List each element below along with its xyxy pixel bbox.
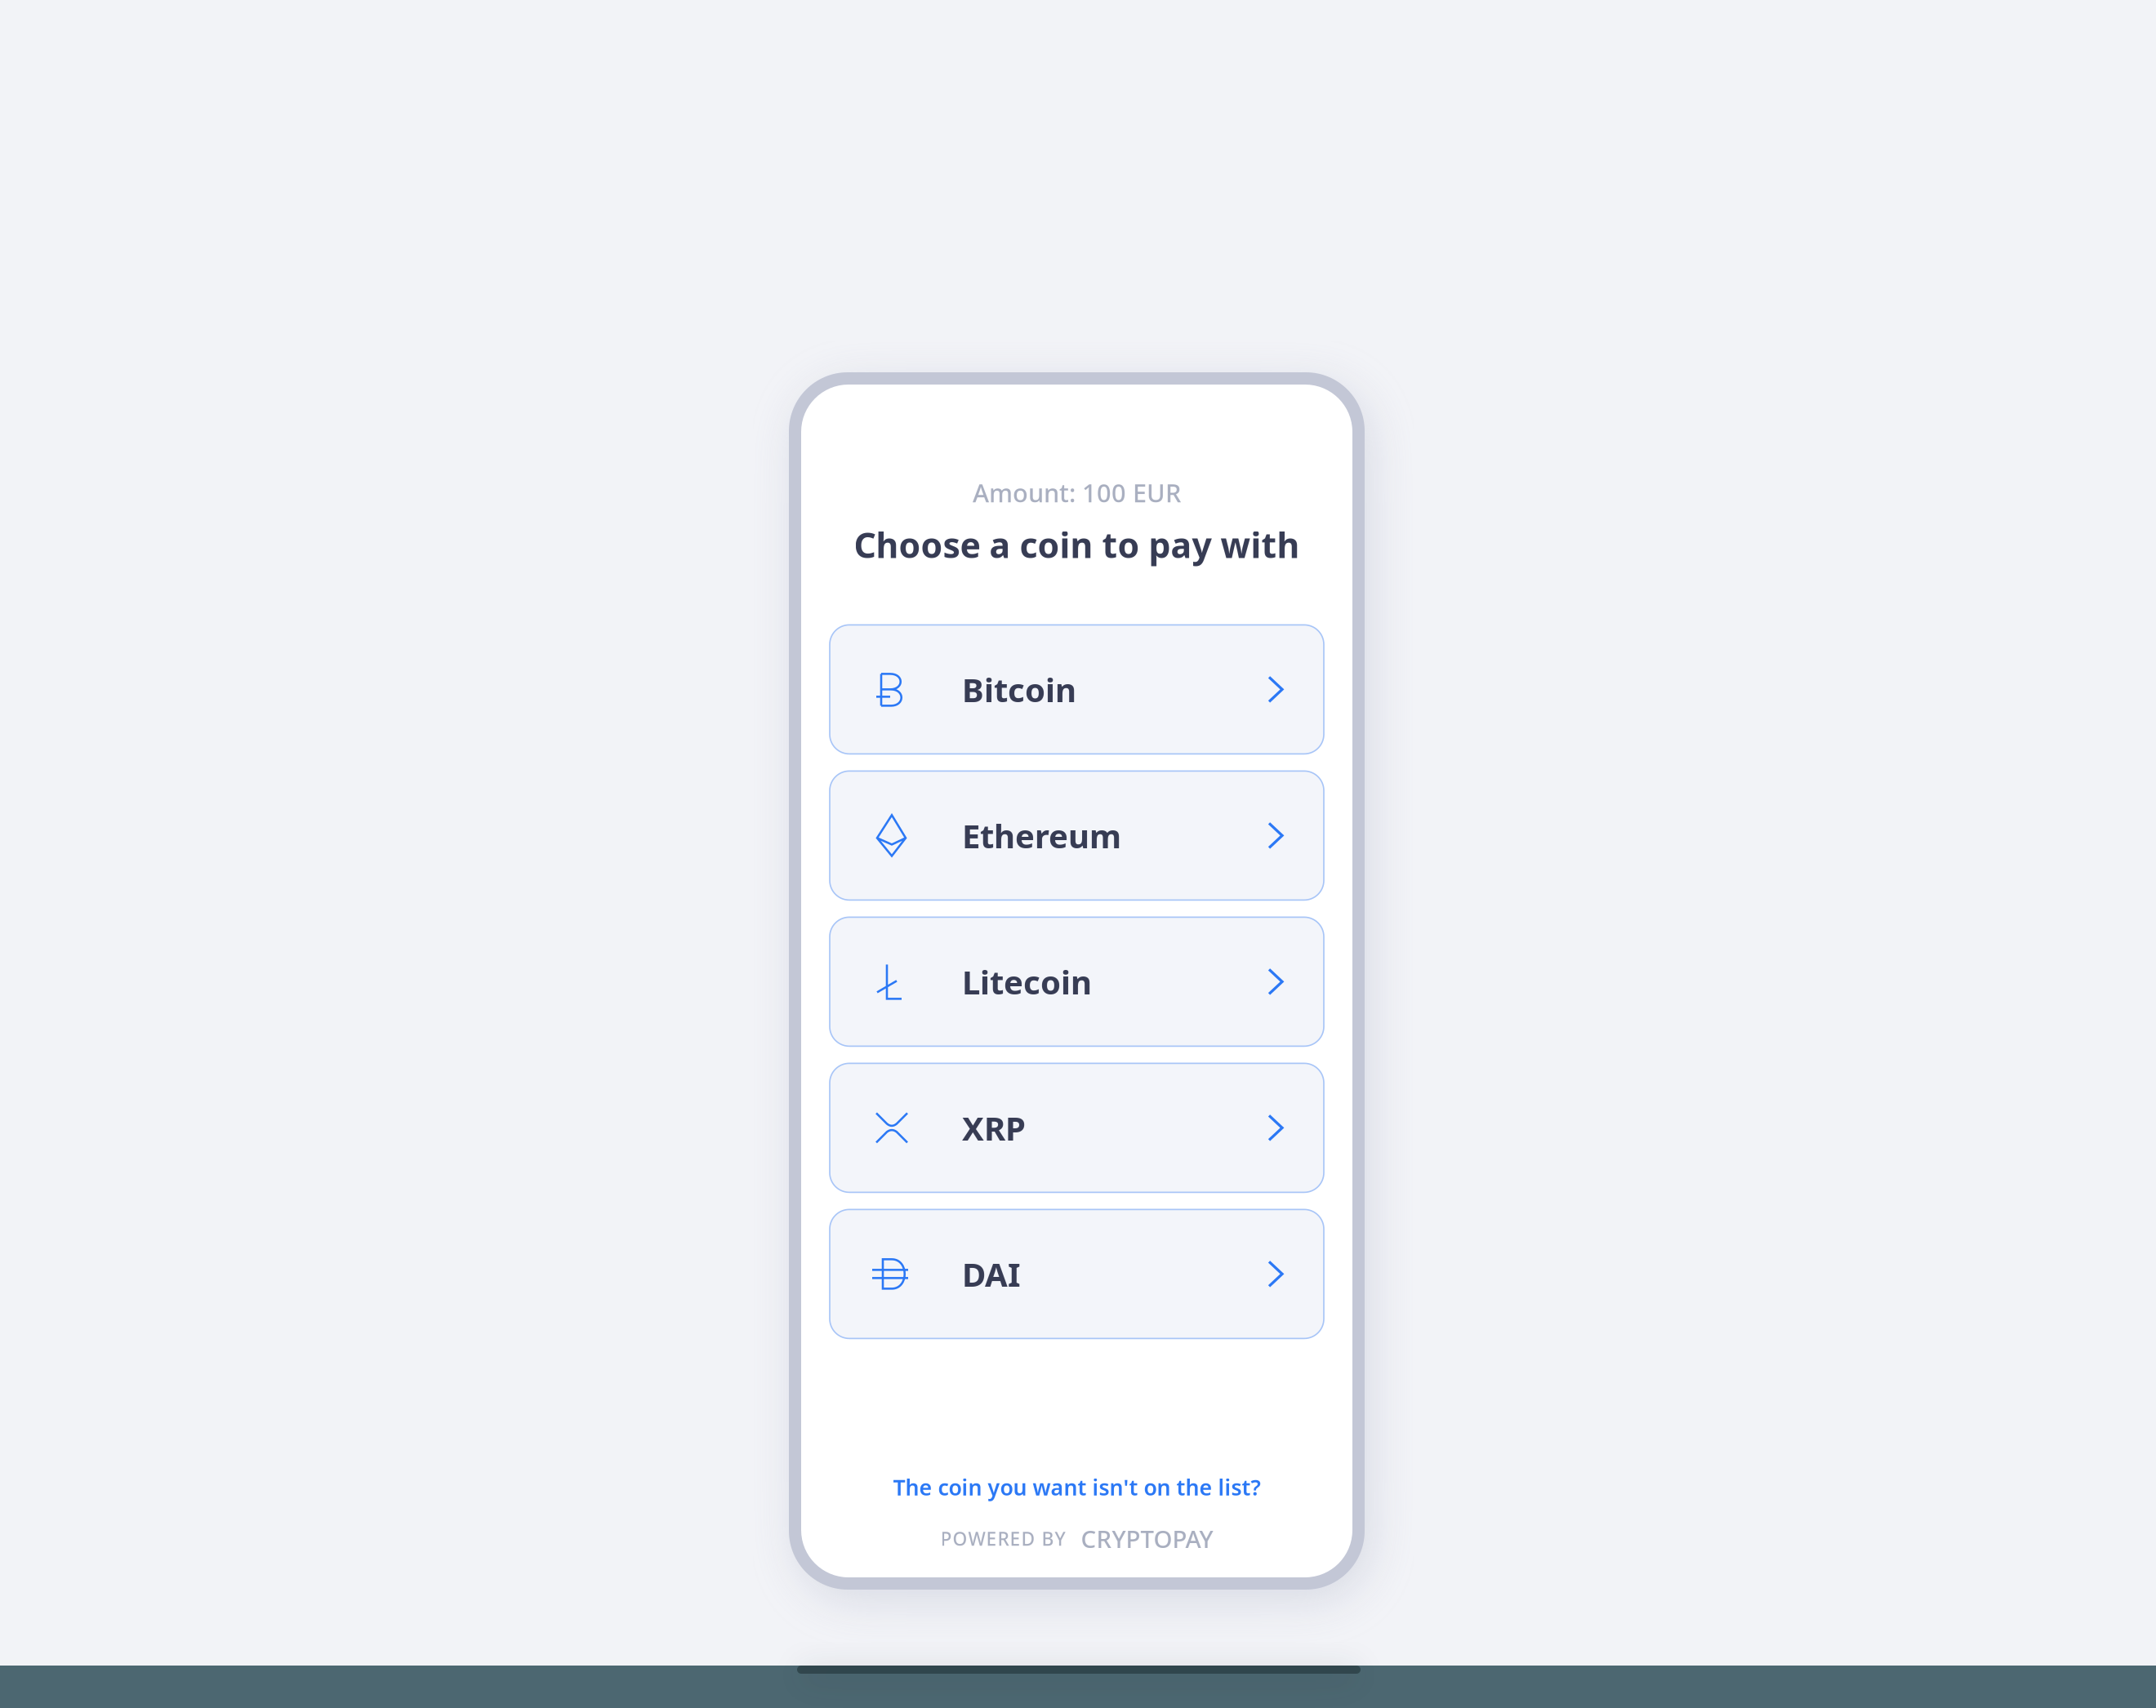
button[interactable]: Litecoin	[830, 917, 1324, 1046]
staticText: POWERED BY	[940, 1526, 1065, 1551]
button[interactable]: The coin you want isn't on the list?	[893, 1473, 1261, 1501]
button[interactable]: XRP	[830, 1063, 1324, 1192]
staticText: The coin you want isn't on the list?	[893, 1473, 1261, 1501]
staticText: Amount: 100 EUR	[973, 476, 1181, 509]
staticText: Choose a coin to pay with	[854, 521, 1300, 568]
staticText: Bitcoin	[962, 668, 1076, 711]
button[interactable]: Ethereum	[830, 771, 1324, 900]
staticText: Ethereum	[962, 814, 1121, 857]
staticText: Litecoin	[962, 960, 1092, 1003]
button[interactable]: Bitcoin	[830, 625, 1324, 754]
staticText: CRYPTOPAY	[1081, 1523, 1213, 1555]
staticText: XRP	[962, 1106, 1026, 1149]
staticText: DAI	[962, 1252, 1021, 1296]
button[interactable]: DAI	[830, 1209, 1324, 1338]
